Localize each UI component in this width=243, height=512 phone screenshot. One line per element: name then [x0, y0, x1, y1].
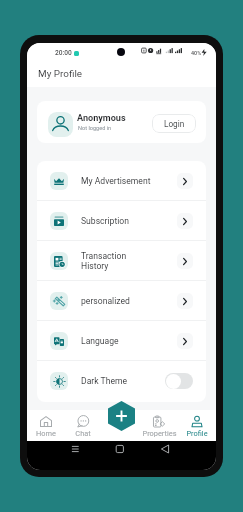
staticText: 40%: [191, 50, 202, 56]
button[interactable]: Dark Theme: [37, 361, 206, 400]
staticText: 20:00: [55, 49, 72, 57]
button[interactable]: Add: [108, 401, 135, 431]
staticText: Chat: [75, 429, 91, 438]
button[interactable]: Dark theme toggle: [165, 373, 193, 389]
button[interactable]: Open Language: [177, 333, 193, 349]
staticText: Home: [36, 429, 56, 438]
staticText: Not logged in: [78, 125, 112, 132]
button[interactable]: Login: [152, 114, 196, 133]
button[interactable]: Transaction History: [37, 241, 206, 280]
button[interactable]: Language: [37, 321, 206, 360]
staticText: Transaction History: [81, 251, 127, 271]
button[interactable]: Open My Advertisement: [177, 173, 193, 189]
staticText: Profile: [186, 429, 208, 438]
staticText: Language: [81, 336, 119, 346]
staticText: Subscription: [81, 216, 129, 226]
button[interactable]: Open personalized: [177, 293, 193, 309]
staticText: personalized: [81, 296, 130, 306]
button[interactable]: Profile: [178, 410, 216, 438]
button[interactable]: My Advertisement: [37, 161, 206, 200]
staticText: Dark Theme: [81, 376, 128, 386]
button[interactable]: personalized: [37, 281, 206, 320]
staticText: My Advertisement: [81, 176, 151, 186]
staticText: My Profile: [38, 68, 83, 80]
button[interactable]: Open Subscription: [177, 213, 193, 229]
staticText: Properties: [142, 429, 177, 438]
button[interactable]: Anonymous: [37, 101, 206, 143]
button[interactable]: Properties: [140, 410, 178, 438]
button[interactable]: Chat: [64, 410, 102, 438]
button[interactable]: Home: [27, 410, 64, 438]
staticText: Anonymous: [77, 113, 126, 124]
button[interactable]: Subscription: [37, 201, 206, 240]
button[interactable]: Open Transaction History: [177, 253, 193, 269]
staticText: Login: [164, 119, 185, 129]
